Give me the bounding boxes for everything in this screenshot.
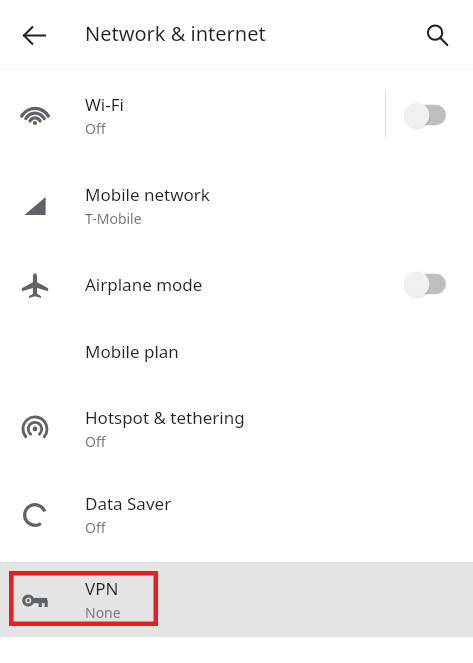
- staticText: Mobile network: [85, 183, 210, 206]
- button[interactable]: Back: [8, 9, 60, 61]
- button[interactable]: Wi-Fi toggle: [397, 95, 453, 135]
- staticText: Off: [85, 518, 106, 537]
- staticText: Network & internet: [85, 20, 266, 47]
- staticText: Airplane mode: [85, 273, 203, 296]
- staticText: Data Saver: [85, 492, 172, 515]
- button[interactable]: Mobile network: [0, 160, 473, 250]
- staticText: Mobile plan: [85, 340, 179, 363]
- staticText: None: [85, 603, 121, 622]
- button[interactable]: Wi-Fi: [0, 70, 473, 160]
- staticText: Off: [85, 119, 106, 138]
- button[interactable]: Airplane mode toggle: [397, 264, 453, 304]
- staticText: T-Mobile: [85, 209, 142, 228]
- button[interactable]: Data Saver: [0, 471, 473, 557]
- staticText: Off: [85, 432, 106, 451]
- button[interactable]: Mobile plan: [0, 318, 473, 385]
- staticText: Hotspot & tethering: [85, 406, 245, 429]
- button[interactable]: VPN: [0, 562, 473, 637]
- button[interactable]: Airplane mode: [0, 250, 473, 318]
- staticText: VPN: [85, 577, 119, 600]
- button[interactable]: Search: [411, 9, 463, 61]
- button[interactable]: Hotspot & tethering: [0, 385, 473, 471]
- staticText: Wi-Fi: [85, 93, 124, 116]
